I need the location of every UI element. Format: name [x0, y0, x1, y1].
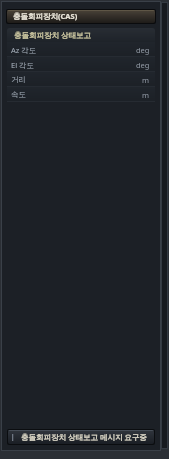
button[interactable]: 속도 [7, 87, 155, 102]
staticText: m [142, 75, 150, 85]
button[interactable]: El 각도 [7, 57, 155, 72]
staticText: Az 각도 [11, 45, 37, 55]
staticText: 충돌회피장치 상태보고 메시지 요구중 [21, 432, 147, 442]
staticText: 충돌회피장치 상태보고 [14, 30, 91, 40]
staticText: 속도 [11, 90, 26, 99]
button[interactable]: Az 각도 [7, 42, 155, 57]
staticText: deg [136, 60, 150, 70]
button[interactable]: 충돌회피장치 상태보고 메시지 요구중 [8, 430, 154, 444]
button[interactable]: 충돌회피장치(CAS) [7, 10, 155, 23]
staticText: El 각도 [11, 60, 35, 70]
staticText: 거리 [11, 75, 26, 84]
button[interactable]: 충돌회피장치 상태보고 [7, 28, 155, 42]
staticText: deg [136, 45, 150, 55]
button[interactable]: 거리 [7, 72, 155, 87]
staticText: m [142, 90, 150, 100]
staticText: 충돌회피장치(CAS) [13, 11, 78, 21]
